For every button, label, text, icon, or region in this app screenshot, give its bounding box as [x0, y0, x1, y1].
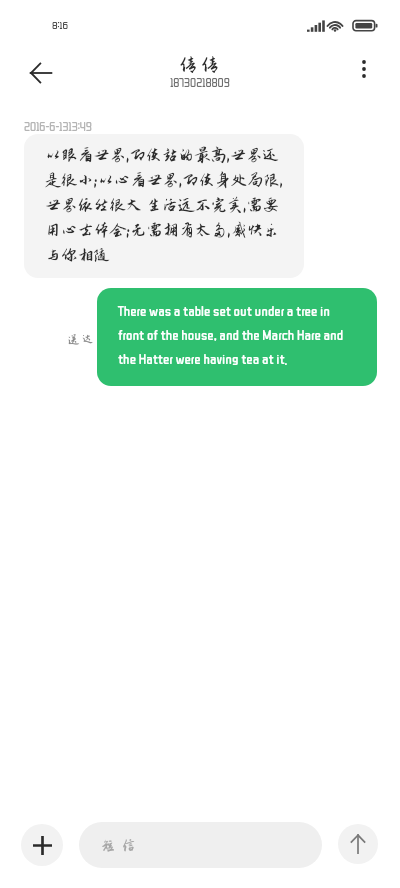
- staticText: 倩倩: [178, 54, 222, 76]
- button[interactable]: Back: [24, 56, 58, 90]
- button[interactable]: Add attachment: [21, 824, 63, 866]
- staticText: There was a table set out under a tree i…: [118, 303, 357, 366]
- staticText: 8:16: [52, 19, 69, 30]
- button[interactable]: More options: [348, 56, 380, 88]
- button[interactable]: 以眼看世界,即使站的最高,世界还是很小;以心看世界,即使身处局限,世界依然很大 …: [24, 134, 304, 278]
- staticText: 以眼看世界,即使站的最高,世界还是很小;以心看世界,即使身处局限,世界依然很大 …: [45, 146, 284, 264]
- button[interactable]: 短信: [79, 822, 322, 868]
- button[interactable]: Send: [338, 824, 378, 864]
- staticText: 短信: [101, 838, 142, 854]
- staticText: 18730218809: [170, 76, 230, 88]
- staticText: 送达: [68, 333, 96, 346]
- staticText: 2016-6-1313:49: [24, 120, 92, 132]
- button[interactable]: There was a table set out under a tree i…: [97, 288, 377, 386]
